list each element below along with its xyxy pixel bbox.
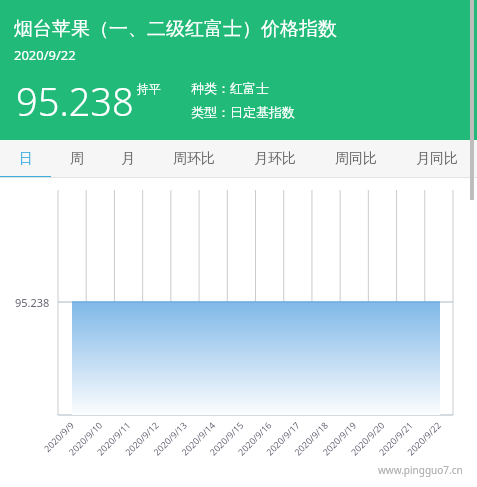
button[interactable]: 日 — [0, 140, 51, 178]
button[interactable]: 周环比 — [153, 140, 234, 178]
staticText: 周 — [70, 150, 84, 168]
staticText: 日 — [19, 150, 33, 168]
staticText: 2020/9/22 — [14, 46, 76, 64]
button[interactable]: 周 — [51, 140, 102, 178]
staticText: 烟台苹果（一、二级红富士）价格指数 — [14, 17, 337, 41]
staticText: 月环比 — [254, 150, 296, 168]
staticText: 持平 — [137, 81, 161, 96]
button[interactable]: 月同比 — [396, 140, 477, 178]
staticText: 95.238 — [16, 75, 134, 127]
button[interactable]: 月 — [102, 140, 153, 178]
staticText: 类型：日定基指数 — [191, 104, 295, 120]
staticText: 月同比 — [416, 150, 458, 168]
staticText: 月 — [121, 150, 135, 168]
button[interactable]: 周同比 — [315, 140, 396, 178]
button[interactable]: 月环比 — [234, 140, 315, 178]
staticText: 周环比 — [173, 150, 215, 168]
staticText: 种类：红富士 — [191, 80, 269, 96]
staticText: 周同比 — [335, 150, 377, 168]
